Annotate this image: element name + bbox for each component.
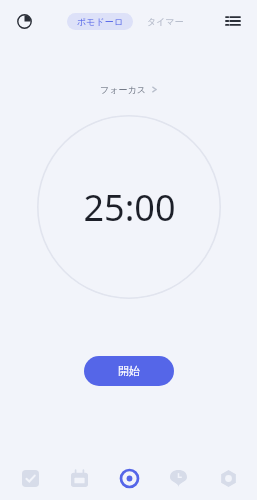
button[interactable]: ポモドーロ	[67, 13, 133, 30]
staticText: フォーカス	[100, 84, 146, 95]
button[interactable]: Tasks	[10, 458, 50, 498]
button[interactable]: Statistics	[11, 8, 37, 34]
staticText: ポモドーロ	[77, 16, 123, 27]
button[interactable]: Pomodoro	[109, 458, 149, 498]
button[interactable]: List	[220, 8, 246, 34]
button[interactable]: Focus places	[158, 458, 198, 498]
button[interactable]: Settings	[208, 458, 248, 498]
staticText: 開始	[118, 364, 140, 378]
button[interactable]: フォーカス	[92, 80, 166, 99]
staticText: タイマー	[147, 16, 184, 27]
staticText: 25:00	[83, 183, 176, 232]
button[interactable]: タイマー	[141, 13, 190, 30]
button[interactable]: 開始	[84, 356, 174, 386]
button[interactable]: Calendar	[59, 458, 99, 498]
